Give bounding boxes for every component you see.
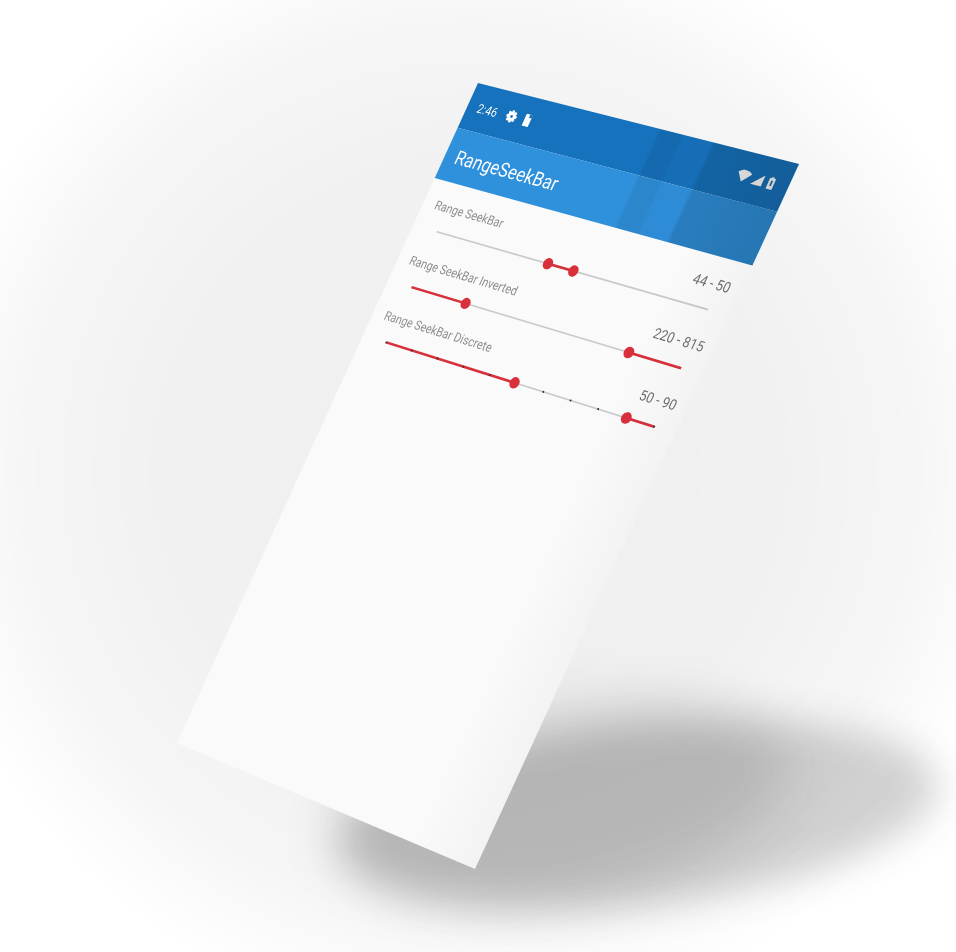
- button[interactable]: RangeSeekBar screen: [0, 0, 956, 952]
